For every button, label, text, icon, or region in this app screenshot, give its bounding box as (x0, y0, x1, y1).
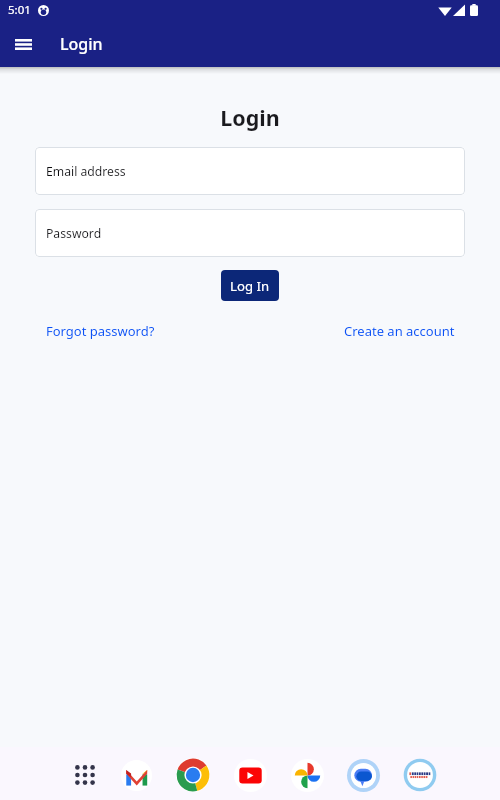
button[interactable]: Chrome (170, 753, 216, 797)
button[interactable]: Settings (397, 753, 443, 797)
button[interactable]: Photos (284, 753, 330, 797)
button[interactable]: Messages (340, 753, 386, 797)
button[interactable]: Apps (62, 753, 108, 797)
button[interactable]: Password (35, 209, 465, 257)
button[interactable]: Email address (35, 147, 465, 195)
staticText: Email address (46, 163, 126, 180)
button[interactable]: YouTube (227, 753, 273, 797)
button[interactable]: Create an account (344, 322, 455, 340)
staticText: Password (46, 225, 102, 242)
button[interactable]: Open navigation menu (7, 28, 39, 60)
staticText: Login (60, 33, 103, 55)
staticText: Login (0, 103, 500, 132)
button[interactable]: Gmail (113, 753, 159, 797)
button[interactable]: Log In (221, 270, 279, 301)
button[interactable]: Forgot password? (46, 322, 155, 340)
staticText: 5:01 (8, 2, 31, 18)
staticText: Log In (230, 277, 270, 295)
